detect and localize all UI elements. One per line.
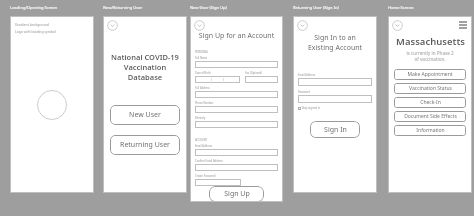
button[interactable]: Back	[297, 20, 308, 31]
staticText: Sign In to an Existing Account	[298, 33, 372, 53]
staticText: National COVID-19 Vaccination Database	[110, 52, 180, 82]
staticText: Sign In	[324, 125, 347, 135]
staticText: Full Name	[195, 56, 208, 60]
staticText: Full Address	[195, 86, 210, 90]
button[interactable]	[195, 106, 278, 113]
staticText: Phone Number	[195, 101, 214, 105]
button[interactable]: Returning User	[110, 135, 180, 155]
button[interactable]	[195, 121, 278, 128]
staticText: Make Appointment	[407, 71, 453, 78]
staticText: New User (Sign Up)	[190, 5, 227, 10]
button[interactable]	[195, 91, 278, 98]
staticText: Sign Up for an Account	[195, 31, 278, 41]
staticText: Confirm Email Address	[195, 159, 223, 163]
staticText: Massachusetts	[396, 35, 465, 48]
staticText: Stay signed in	[302, 106, 321, 110]
staticText: Create Password	[195, 174, 216, 178]
staticText: Email Address	[195, 144, 213, 148]
button[interactable]	[245, 76, 278, 83]
staticText: Loading/Opening Screen	[10, 5, 58, 10]
button[interactable]	[195, 61, 278, 68]
button[interactable]: / /	[195, 76, 240, 83]
button[interactable]: Information	[394, 125, 466, 136]
staticText: Email Address	[298, 73, 316, 77]
button[interactable]: Check-In	[394, 97, 466, 108]
button[interactable]	[195, 179, 241, 186]
button[interactable]: Back	[392, 20, 403, 31]
staticText: Sex (Optional)	[245, 71, 262, 75]
button[interactable]: Back	[194, 20, 205, 31]
button[interactable]	[195, 164, 278, 171]
button[interactable]: Sign Up	[209, 186, 264, 202]
staticText: / /	[211, 78, 225, 82]
button[interactable]: Back	[107, 20, 118, 31]
staticText: New/Returning User	[103, 5, 143, 10]
staticText: is currently in Phase 2 of vaccination.	[406, 50, 454, 62]
staticText: Ethnicity	[195, 116, 206, 120]
button[interactable]	[195, 149, 278, 156]
staticText: Date of Birth	[195, 71, 211, 75]
button[interactable]: Document Side Effects	[394, 111, 466, 122]
button[interactable]: Sign In	[310, 121, 360, 138]
staticText: PERSONAL	[195, 50, 209, 54]
button[interactable]: Make Appointment	[394, 69, 466, 80]
staticText: Home Screen	[388, 5, 414, 10]
staticText: Document Side Effects	[404, 113, 457, 120]
staticText: ACCOUNT	[195, 138, 208, 142]
staticText: Returning User	[120, 140, 170, 150]
staticText: Information	[416, 127, 445, 134]
button[interactable]: Stay signed in	[298, 106, 321, 110]
staticText: Check-In	[420, 99, 441, 106]
staticText: Vaccination Status	[409, 85, 452, 92]
staticText: Logo with loading symbol	[15, 29, 56, 34]
staticText: Sign Up	[224, 189, 250, 199]
staticText: New User	[129, 110, 161, 120]
staticText: Gradient background	[15, 22, 49, 27]
button[interactable]: Menu	[458, 20, 468, 30]
staticText: Password	[298, 90, 310, 94]
button[interactable]: Vaccination Status	[394, 83, 466, 94]
button[interactable]: New User	[110, 105, 180, 125]
button[interactable]	[298, 95, 372, 103]
staticText: Returning User (Sign In)	[293, 5, 339, 10]
button[interactable]	[298, 78, 372, 86]
